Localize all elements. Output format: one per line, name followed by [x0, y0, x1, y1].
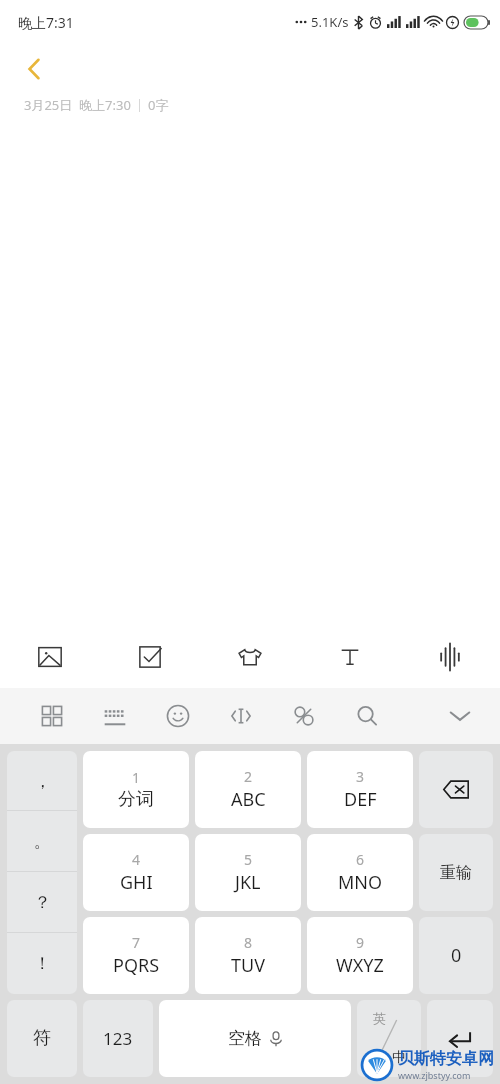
button[interactable]: Cursor — [209, 688, 272, 744]
button[interactable]: Search — [335, 688, 398, 744]
staticText: www.zjbstyy.com — [398, 1069, 471, 1081]
staticText: 123 — [103, 1027, 133, 1050]
button[interactable]: 符号 — [7, 1000, 77, 1077]
button[interactable]: Grid — [20, 688, 83, 744]
button[interactable]: Keyboard — [83, 688, 146, 744]
staticText: 1 — [132, 768, 141, 787]
staticText: 5 — [244, 850, 253, 869]
button[interactable]: Checklist — [100, 626, 200, 688]
button[interactable]: 。 — [7, 811, 77, 872]
staticText: 0 — [451, 943, 462, 968]
button[interactable]: Enter — [427, 1000, 493, 1077]
staticText: 9 — [356, 933, 365, 952]
button[interactable]: ， — [7, 751, 77, 811]
button[interactable]: ！ — [7, 933, 77, 994]
button[interactable]: Image — [0, 626, 100, 688]
staticText: 中 — [392, 1049, 406, 1067]
button[interactable]: 1 — [83, 751, 189, 828]
button[interactable]: 2 — [195, 751, 301, 828]
button[interactable]: ？ — [7, 872, 77, 933]
button[interactable]: 6 — [307, 834, 413, 911]
button[interactable]: 空格 — [159, 1000, 351, 1077]
button[interactable]: 重输 — [419, 834, 493, 911]
staticText: 英 — [373, 1010, 386, 1026]
staticText: 4 — [132, 850, 141, 869]
staticText: MNO — [338, 870, 383, 895]
staticText: 3月25日 晚上7:30 — [24, 96, 131, 114]
staticText: 。 — [34, 831, 51, 852]
button[interactable]: Backspace — [419, 751, 493, 828]
staticText: ABC — [231, 787, 266, 812]
staticText: 符 — [33, 1027, 51, 1050]
button[interactable]: 4 — [83, 834, 189, 911]
staticText: ， — [34, 771, 51, 792]
staticText: 6 — [356, 850, 365, 869]
button[interactable]: Audio — [400, 626, 500, 688]
staticText: 8 — [244, 933, 253, 952]
button[interactable]: Hide keyboard — [438, 694, 482, 738]
button[interactable]: 0 — [419, 917, 493, 994]
staticText: 重输 — [440, 863, 472, 883]
button[interactable]: 9 — [307, 917, 413, 994]
button[interactable]: Emoji — [146, 688, 209, 744]
staticText: PQRS — [113, 953, 160, 978]
staticText: TUV — [231, 953, 265, 978]
button[interactable]: 123 — [83, 1000, 153, 1077]
button[interactable]: Style — [200, 626, 300, 688]
staticText: 2 — [244, 767, 253, 786]
staticText: ！ — [34, 953, 51, 974]
staticText: 贝斯特安卓网 — [398, 1049, 494, 1069]
button[interactable]: Clip — [272, 688, 335, 744]
staticText: GHI — [120, 870, 153, 895]
staticText: 5.1K/s — [311, 13, 349, 31]
staticText: ？ — [34, 892, 51, 913]
button[interactable]: 中英切换 — [357, 1000, 421, 1077]
staticText: 3 — [356, 767, 365, 786]
button[interactable]: Text format — [300, 626, 400, 688]
button[interactable]: Back — [14, 49, 54, 89]
staticText: 空格 — [228, 1028, 262, 1049]
staticText: 0字 — [148, 96, 169, 114]
staticText: JKL — [235, 870, 261, 895]
staticText: 7 — [132, 933, 141, 952]
staticText: WXYZ — [336, 953, 384, 978]
button[interactable]: 7 — [83, 917, 189, 994]
button[interactable]: 5 — [195, 834, 301, 911]
staticText: 分词 — [118, 788, 154, 811]
button[interactable]: 8 — [195, 917, 301, 994]
button[interactable]: 3 — [307, 751, 413, 828]
staticText: DEF — [344, 787, 377, 812]
staticText: 晚上7:31 — [18, 13, 74, 32]
